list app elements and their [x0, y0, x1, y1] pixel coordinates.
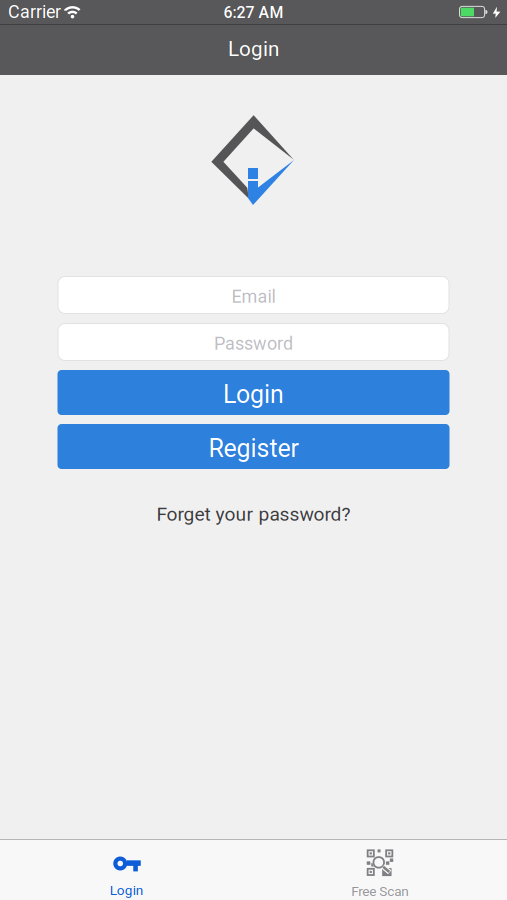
button[interactable]: Register — [57, 424, 449, 469]
staticText: 6:27 AM — [223, 3, 283, 22]
staticText: Login — [223, 380, 284, 409]
button[interactable]: Login — [0, 840, 253, 900]
button[interactable]: Free Scan — [253, 840, 507, 900]
staticText: Login — [110, 882, 144, 898]
button[interactable]: Email — [57, 276, 449, 314]
staticText: Free Scan — [351, 883, 409, 899]
staticText: Forget your password? — [156, 503, 350, 525]
staticText: Register — [208, 434, 298, 463]
button[interactable]: Login — [57, 370, 449, 415]
staticText: Password — [214, 333, 293, 354]
staticText: Login — [228, 37, 279, 61]
button[interactable]: Password — [57, 323, 449, 361]
staticText: Carrier — [8, 1, 61, 22]
button[interactable]: Forget your password? — [156, 503, 350, 525]
staticText: Email — [231, 286, 275, 307]
